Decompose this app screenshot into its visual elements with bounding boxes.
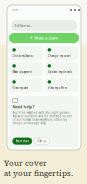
staticText: I'd like to… — [14, 23, 32, 28]
staticText: Make a claim — [34, 35, 58, 41]
staticText: Call us — [37, 139, 46, 143]
staticText: Your cover — [4, 158, 47, 168]
button[interactable]: Make a payment — [10, 62, 43, 76]
staticText: View my offers — [48, 86, 67, 90]
staticText: at your fingertips. — [4, 168, 73, 178]
staticText: Check my Excess — [12, 54, 32, 58]
staticText: View my card — [12, 86, 28, 90]
button[interactable]: View my card — [10, 78, 43, 92]
staticText: cover — [12, 8, 19, 12]
button[interactable]: + — [9, 33, 79, 43]
staticText: Start chat — [16, 139, 29, 143]
staticText: You'll be matched with the right person.… — [13, 111, 73, 125]
staticText: + — [30, 34, 33, 42]
button[interactable]: Call us — [34, 138, 49, 144]
staticText: Need help? — [13, 104, 35, 109]
staticText: Update my details — [48, 70, 72, 74]
button[interactable]: Start chat — [13, 138, 32, 144]
button[interactable]: Change my cover — [45, 46, 78, 60]
button[interactable]: Check my Excess — [10, 46, 43, 60]
button[interactable]: View my offers — [45, 78, 78, 92]
staticText: Make a payment — [12, 70, 32, 74]
button[interactable]: Update my details — [45, 62, 78, 76]
staticText: Change my cover — [48, 54, 71, 58]
